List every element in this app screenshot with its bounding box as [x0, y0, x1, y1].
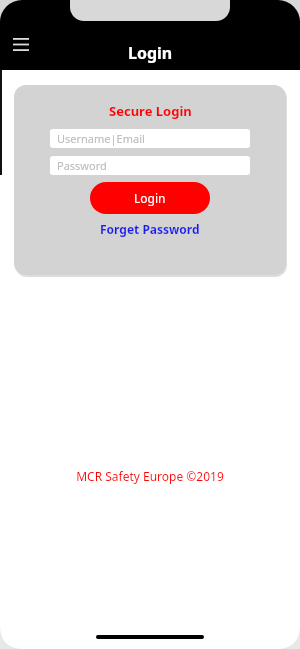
button[interactable]: Username|Email [50, 129, 250, 148]
staticText: Secure Login [109, 102, 192, 120]
staticText: MCR Safety Europe ©2019 [76, 468, 224, 484]
staticText: Login [134, 190, 166, 206]
staticText: Forget Password [100, 221, 200, 237]
button[interactable]: Password [50, 156, 250, 175]
staticText: Login [128, 42, 173, 64]
button[interactable]: Open navigation menu [6, 29, 36, 59]
staticText: Username|Email [57, 131, 145, 146]
button[interactable]: Forget Password [96, 220, 204, 238]
button[interactable]: Login [90, 182, 210, 214]
staticText: Password [57, 158, 107, 173]
